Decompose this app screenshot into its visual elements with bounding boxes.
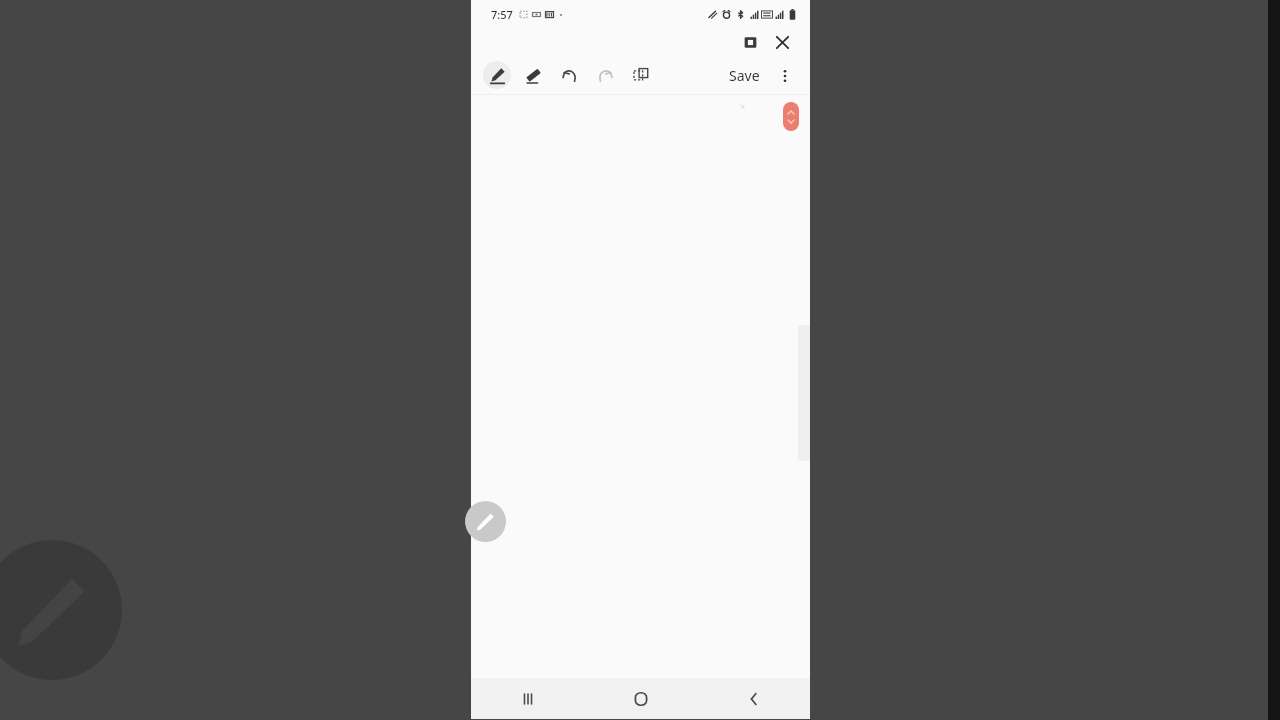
button[interactable]: Recent apps <box>471 678 584 719</box>
button[interactable]: Select <box>627 61 655 89</box>
button[interactable]: Save <box>723 62 766 89</box>
button[interactable]: Back <box>697 678 810 719</box>
button[interactable]: Redo <box>591 61 619 89</box>
button[interactable]: Pen tool <box>465 501 506 542</box>
button[interactable]: Close <box>768 28 796 56</box>
button[interactable]: Floating pen shortcut <box>0 540 122 680</box>
button[interactable]: Home <box>584 678 697 719</box>
staticText: 7:57 <box>491 7 513 22</box>
button[interactable]: Pen <box>483 61 511 89</box>
staticText: Save <box>729 66 760 85</box>
button[interactable]: Eraser <box>519 61 547 89</box>
button[interactable]: Scroll up or down <box>783 102 799 131</box>
button[interactable]: More options <box>772 63 798 89</box>
button[interactable]: Picture in picture <box>736 28 764 56</box>
button[interactable]: Undo <box>555 61 583 89</box>
